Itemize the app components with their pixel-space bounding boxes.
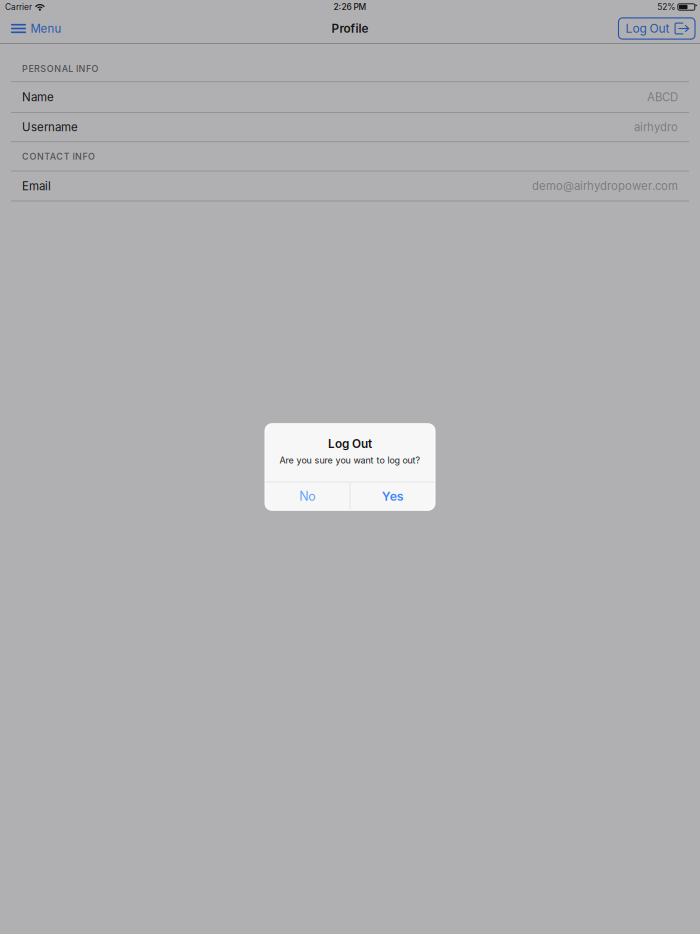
staticText: PERSONAL INFO <box>22 63 98 74</box>
staticText: demo@airhydropower.com <box>532 179 678 193</box>
button[interactable]: Email <box>0 171 700 201</box>
staticText: Carrier <box>5 2 32 12</box>
staticText: ABCD <box>647 90 678 104</box>
button[interactable]: Log Out <box>618 18 695 39</box>
staticText: 52% <box>657 2 675 12</box>
staticText: 2:26 PM <box>333 2 366 12</box>
staticText: Username <box>22 120 78 134</box>
staticText: No <box>299 489 315 504</box>
button[interactable]: No <box>265 482 350 510</box>
staticText: Log Out <box>328 437 372 451</box>
staticText: Profile <box>331 21 368 36</box>
staticText: Menu <box>30 22 61 35</box>
button[interactable]: Name <box>0 82 700 113</box>
staticText: Are you sure you want to log out? <box>279 455 420 466</box>
button[interactable]: Yes <box>350 482 435 510</box>
staticText: CONTACT INFO <box>22 151 95 162</box>
staticText: Log Out <box>625 21 669 36</box>
staticText: Email <box>22 179 51 193</box>
staticText: Yes <box>382 489 404 504</box>
button[interactable]: Username <box>0 113 700 142</box>
staticText: Name <box>22 90 54 104</box>
button[interactable]: Menu <box>0 15 69 41</box>
staticText: airhydro <box>634 120 678 134</box>
